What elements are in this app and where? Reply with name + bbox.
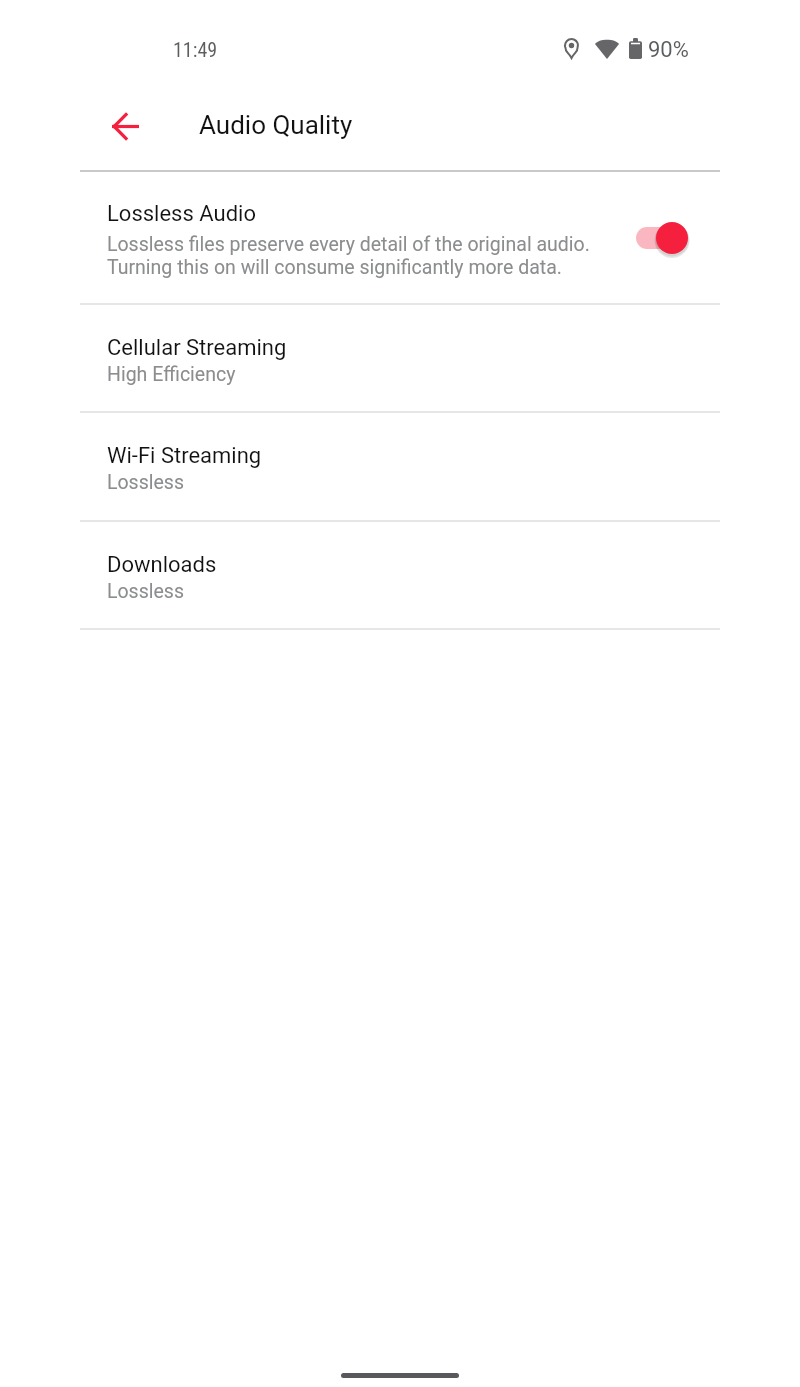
button[interactable]: Cellular Streaming [0, 305, 800, 413]
button[interactable]: Lossless Audio [626, 212, 700, 264]
staticText: Lossless Audio [107, 201, 256, 227]
staticText: Cellular Streaming [107, 335, 287, 361]
button[interactable]: Lossless Audio [0, 171, 800, 304]
staticText: Wi-Fi Streaming [107, 443, 262, 469]
staticText: Lossless files preserve every detail of … [107, 233, 590, 279]
staticText: High Efficiency [107, 363, 236, 386]
button[interactable]: Downloads [0, 522, 800, 630]
button[interactable]: Back [101, 102, 149, 150]
staticText: Audio Quality [199, 110, 353, 140]
staticText: Lossless [107, 471, 184, 494]
staticText: Downloads [107, 552, 217, 578]
staticText: 90% [648, 37, 689, 63]
button[interactable]: Wi-Fi Streaming [0, 413, 800, 521]
staticText: 11:49 [173, 38, 218, 61]
staticText: Lossless [107, 580, 184, 603]
